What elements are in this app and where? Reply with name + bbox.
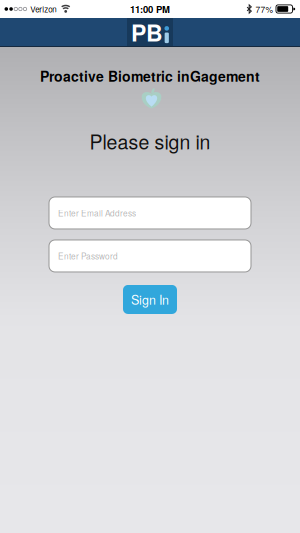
staticText: Proactive Biometric inGagement (40, 66, 260, 86)
staticText: 77% (255, 3, 273, 15)
staticText: Sign In (131, 290, 169, 308)
staticText: Please sign in (89, 127, 210, 155)
button[interactable]: Sign In (123, 285, 177, 314)
staticText: Enter Password (58, 250, 118, 262)
button[interactable]: Enter Password (49, 240, 251, 272)
button[interactable]: Enter Email Address (49, 197, 251, 229)
staticText: Enter Email Address (58, 207, 136, 219)
staticText: 11:00 PM (130, 2, 170, 16)
staticText: PB (131, 15, 163, 48)
staticText: Verizon (30, 3, 56, 15)
